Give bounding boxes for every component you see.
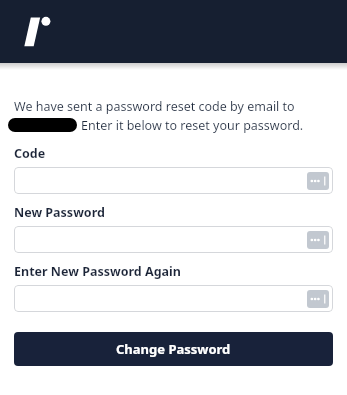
- staticText: Code: [14, 145, 46, 162]
- button[interactable]: Autofill suggestions: [14, 285, 333, 312]
- button[interactable]: Autofill suggestions: [14, 167, 333, 194]
- other: Autofill suggestions: [307, 172, 329, 190]
- button[interactable]: Autofill suggestions: [14, 226, 333, 253]
- staticText: Enter New Password Again: [14, 263, 181, 280]
- other: App logo: [20, 14, 56, 49]
- other: Autofill suggestions: [307, 231, 329, 249]
- other: Autofill suggestions: [307, 290, 329, 308]
- staticText: New Password: [14, 204, 105, 221]
- staticText: Enter it below to reset your password.: [81, 117, 304, 133]
- button[interactable]: Change Password: [14, 332, 333, 366]
- staticText: Change Password: [116, 340, 231, 358]
- staticText: We have sent a password reset code by em…: [14, 98, 333, 115]
